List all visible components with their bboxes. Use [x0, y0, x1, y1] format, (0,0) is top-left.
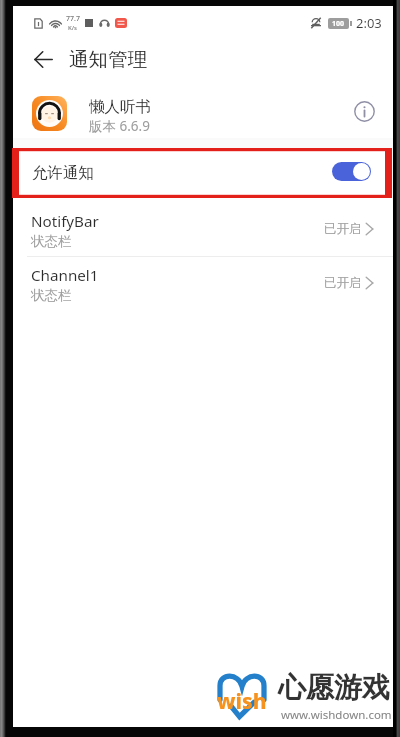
- button[interactable]: NotifyBar: [13, 203, 393, 257]
- staticText: 心愿游戏: [278, 670, 390, 705]
- staticText: 77.7: [66, 14, 80, 24]
- staticText: K/s: [68, 24, 78, 32]
- staticText: 已开启: [324, 275, 362, 291]
- staticText: 2:03: [356, 14, 382, 32]
- staticText: NotifyBar: [31, 211, 99, 232]
- staticText: 100: [332, 19, 345, 29]
- button[interactable]: App info: [349, 96, 379, 126]
- staticText: 状态栏: [31, 287, 72, 304]
- staticText: 通知管理: [69, 47, 147, 72]
- staticText: 允许通知: [32, 163, 94, 183]
- staticText: 懒人听书: [89, 97, 151, 117]
- staticText: 版本 6.6.9: [89, 117, 150, 135]
- button[interactable]: Channel1: [13, 257, 393, 311]
- staticText: wish: [217, 687, 267, 716]
- staticText: 状态栏: [31, 233, 72, 250]
- staticText: www.wishdown.com: [281, 707, 392, 723]
- button[interactable]: 允许通知: [13, 148, 393, 198]
- button[interactable]: Back: [20, 36, 66, 82]
- staticText: 已开启: [324, 221, 362, 237]
- staticText: Channel1: [31, 265, 99, 286]
